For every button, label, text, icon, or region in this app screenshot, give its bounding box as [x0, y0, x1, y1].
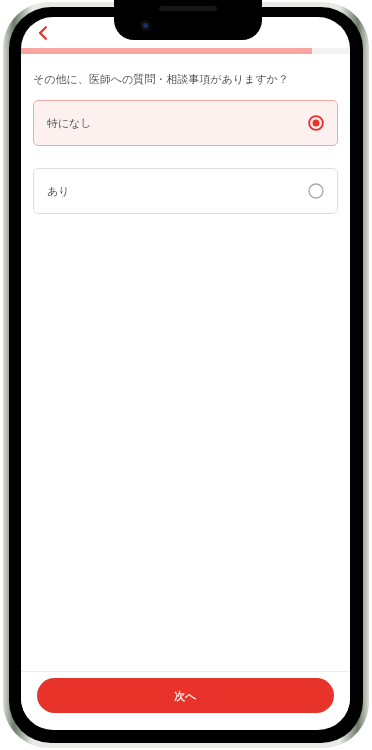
staticText: あり: [47, 184, 70, 198]
staticText: その他に、医師への質問・相談事項がありますか？: [33, 72, 289, 86]
staticText: 特になし: [47, 116, 92, 130]
button[interactable]: 次へ: [37, 678, 334, 713]
button[interactable]: Back: [25, 17, 61, 48]
button[interactable]: あり: [33, 168, 338, 214]
button[interactable]: 特になし: [33, 100, 338, 146]
staticText: 次へ: [174, 689, 197, 703]
